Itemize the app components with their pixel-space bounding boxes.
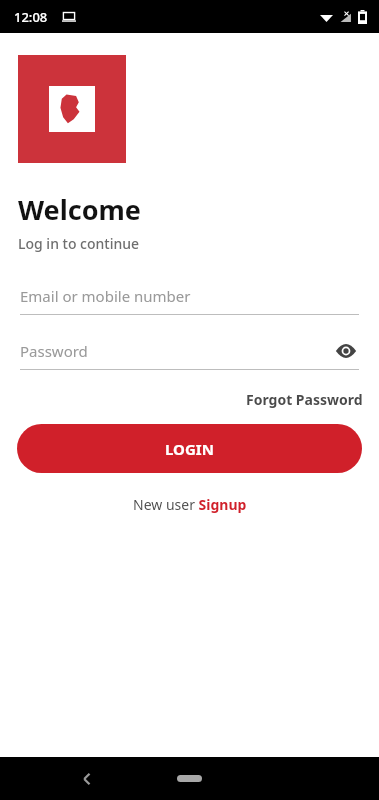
staticText: 12:08 (14, 8, 48, 26)
button[interactable]: Password (20, 338, 359, 370)
staticText: Email or mobile number (20, 286, 191, 306)
staticText: Password (20, 341, 88, 361)
button[interactable]: Email or mobile number (20, 283, 359, 315)
staticText: Forgot Password (246, 390, 363, 409)
button[interactable]: New user Signup (127, 489, 253, 520)
staticText: New user Signup (133, 495, 247, 514)
staticText: Log in to continue (18, 234, 140, 253)
staticText: LOGIN (165, 439, 214, 459)
button[interactable]: Home (177, 775, 202, 782)
button[interactable]: LOGIN (17, 424, 362, 473)
button[interactable]: Back (72, 764, 102, 794)
button[interactable]: Show password (333, 338, 359, 364)
button[interactable]: Forgot Password (230, 386, 379, 413)
staticText: Welcome (18, 191, 141, 228)
